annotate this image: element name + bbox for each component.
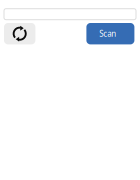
button[interactable]: Scan — [86, 23, 134, 44]
button[interactable]: Refresh — [4, 23, 35, 44]
staticText: Scan — [99, 28, 116, 39]
